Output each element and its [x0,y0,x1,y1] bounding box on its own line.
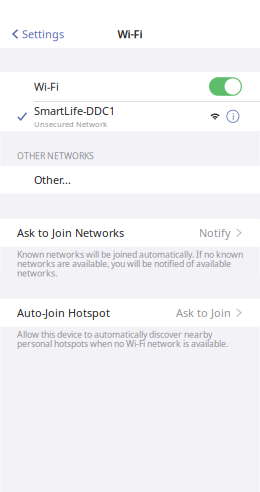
staticText: SmartLife-DDC1 [34,103,115,118]
staticText: Other... [34,172,71,187]
staticText: Wi-Fi [117,27,142,41]
staticText: Ask to Join [176,305,231,320]
button[interactable]: Ask to Join Networks [0,219,260,247]
staticText: Notify [199,225,231,240]
staticText: Wi-Fi [34,79,59,94]
staticText: Unsecured Network [34,119,107,129]
button[interactable]: Wi-Fi [209,77,242,96]
staticText: OTHER NETWORKS [17,150,94,162]
staticText: Settings [22,27,64,41]
button[interactable]: SmartLife-DDC1 [0,103,260,129]
staticText: networks are available, you will be noti… [17,258,231,270]
button[interactable]: Auto-Join Hotspot [0,299,260,327]
staticText: networks. [17,267,57,279]
button[interactable]: Network information [227,110,239,122]
button[interactable]: Settings [0,22,72,46]
staticText: i [232,110,234,123]
staticText: Ask to Join Networks [17,225,124,240]
staticText: Auto-Join Hotspot [17,305,110,320]
staticText: Known networks will be joined automatica… [17,249,243,260]
button[interactable]: Other... [0,166,260,194]
staticText: Allow this device to automatically disco… [17,328,212,340]
staticText: personal hotspots when no Wi-Fi network … [17,338,228,350]
